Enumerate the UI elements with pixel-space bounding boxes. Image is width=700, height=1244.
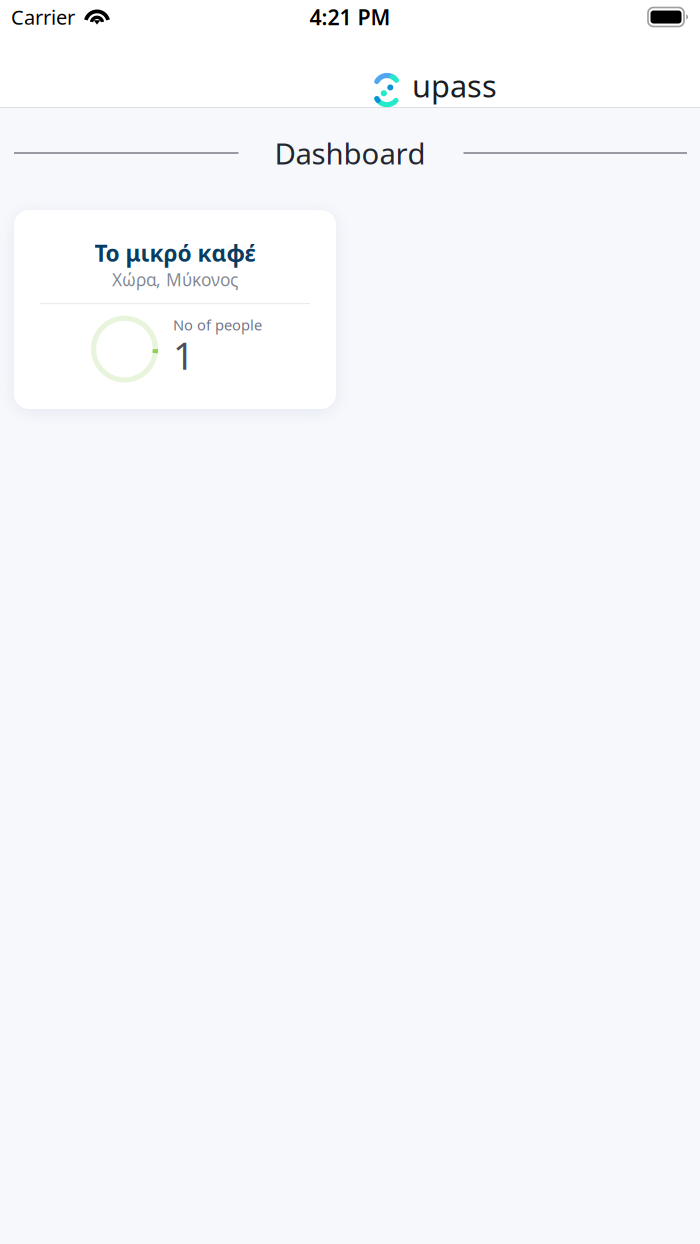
button[interactable]: upass [374, 65, 497, 108]
staticText: Dashboard [274, 133, 425, 172]
button[interactable]: Το μικρό καφέ [14, 210, 336, 409]
staticText: upass [412, 65, 497, 106]
staticText: Carrier [11, 4, 75, 30]
staticText: Χώρα, Μύκονος [112, 268, 238, 291]
staticText: 4:21 PM [309, 3, 390, 31]
staticText: No of people [173, 315, 262, 335]
staticText: 1 [173, 331, 194, 380]
staticText: Το μικρό καφέ [94, 238, 255, 268]
